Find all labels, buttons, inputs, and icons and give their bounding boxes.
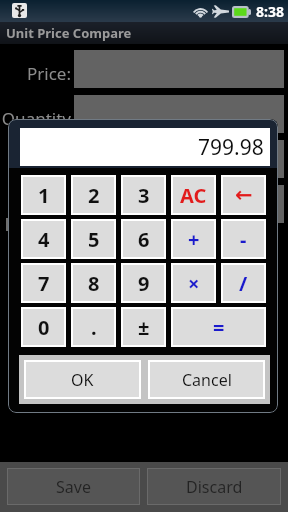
button[interactable]: 6 (123, 221, 164, 257)
button[interactable]: 7 (23, 265, 64, 301)
other: USB connected (12, 3, 27, 18)
button[interactable]: - (223, 221, 264, 257)
button[interactable]: 2 (73, 177, 114, 213)
button[interactable]: . (73, 309, 114, 345)
staticText: 2 (88, 182, 100, 209)
staticText: . (91, 314, 97, 341)
staticText: Quantity: (0, 107, 71, 153)
button[interactable]: Cancel (150, 362, 263, 397)
staticText: Discard (186, 476, 243, 498)
staticText: 5 (88, 226, 100, 253)
button[interactable]: Save (8, 469, 139, 504)
staticText: Cancel (182, 369, 232, 391)
staticText: 1 (38, 182, 50, 209)
button[interactable]: 3 (123, 177, 164, 213)
staticText: 0 (38, 314, 50, 341)
button[interactable]: 8 (73, 265, 114, 301)
staticText: Unit Price Compare (6, 24, 132, 42)
button[interactable]: 9 (123, 265, 164, 301)
staticText: OK (71, 369, 94, 391)
staticText: 799.98 (198, 133, 264, 162)
button[interactable]: 799.98 (20, 128, 270, 166)
staticText: 8:38 (256, 2, 284, 21)
staticText: 8 (88, 270, 100, 297)
button[interactable] (74, 185, 284, 223)
button[interactable]: / (223, 265, 264, 301)
button[interactable]: 1 (23, 177, 64, 213)
staticText: ← (235, 183, 253, 207)
staticText: / (239, 270, 248, 297)
staticText: 7 (38, 270, 50, 297)
button[interactable]: = (173, 309, 264, 345)
staticText: - (240, 226, 247, 253)
button[interactable] (74, 95, 284, 133)
button[interactable] (74, 140, 284, 178)
button[interactable]: 0 (23, 309, 64, 345)
staticText: Save (56, 476, 91, 498)
button[interactable]: + (173, 221, 214, 257)
button[interactable]: ± (123, 309, 164, 345)
button[interactable]: 5 (73, 221, 114, 257)
staticText: ± (138, 314, 150, 341)
button[interactable]: Discard (148, 469, 280, 504)
button[interactable]: 4 (23, 221, 64, 257)
staticText: 9 (138, 270, 150, 297)
staticText: 3 (138, 182, 150, 209)
staticText: Price: (0, 62, 71, 85)
staticText: AC (180, 182, 207, 209)
button[interactable]: OK (26, 362, 139, 397)
button[interactable]: AC (173, 177, 214, 213)
button[interactable]: Backspace (223, 177, 264, 213)
staticText: × (188, 270, 200, 297)
staticText: 4 (38, 226, 50, 253)
staticText: + (188, 226, 200, 253)
button[interactable]: × (173, 265, 214, 301)
staticText: = (213, 314, 225, 341)
staticText: 6 (138, 226, 150, 253)
